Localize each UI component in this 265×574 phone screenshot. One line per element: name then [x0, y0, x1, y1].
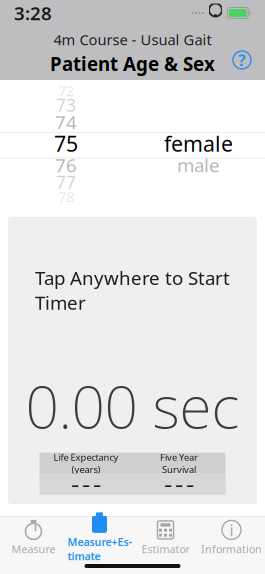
button[interactable]: i	[198, 516, 264, 558]
staticText: Measure+Estimate	[67, 535, 131, 563]
staticText: Patient Age & Sex	[50, 51, 215, 76]
button[interactable]: Help	[225, 43, 259, 77]
staticText: 0.00 sec	[25, 367, 239, 445]
staticText: 3:28	[14, 1, 52, 25]
staticText: male	[177, 153, 220, 177]
staticText: ?	[238, 49, 246, 71]
staticText: 77	[56, 170, 76, 193]
button[interactable]: Measure+Estimate	[66, 516, 132, 558]
staticText: – – –	[164, 474, 193, 494]
button[interactable]: Estimator	[132, 516, 198, 558]
staticText: (years)	[71, 463, 100, 476]
staticText: 76	[55, 153, 77, 177]
staticText: Tap Anywhere to Start Timer	[35, 265, 230, 315]
staticText: female	[164, 129, 233, 158]
staticText: 75	[54, 129, 78, 158]
staticText: 4m Course - Usual Gait	[53, 30, 211, 49]
staticText: 72	[58, 81, 74, 100]
staticText: Life Expectancy	[53, 451, 118, 463]
staticText: Five Year	[160, 451, 198, 463]
staticText: Survival	[162, 463, 196, 476]
staticText: 73	[56, 93, 76, 116]
button[interactable]: Tap Anywhere to Start Timer	[8, 217, 257, 504]
staticText: 78	[58, 187, 74, 206]
button[interactable]: Measure	[0, 516, 66, 558]
staticText: Information	[201, 542, 262, 556]
staticText: i	[229, 519, 233, 540]
staticText: Measure	[11, 542, 55, 556]
staticText: 74	[55, 110, 77, 134]
staticText: Estimator	[141, 542, 189, 556]
staticText: – – –	[71, 474, 100, 494]
